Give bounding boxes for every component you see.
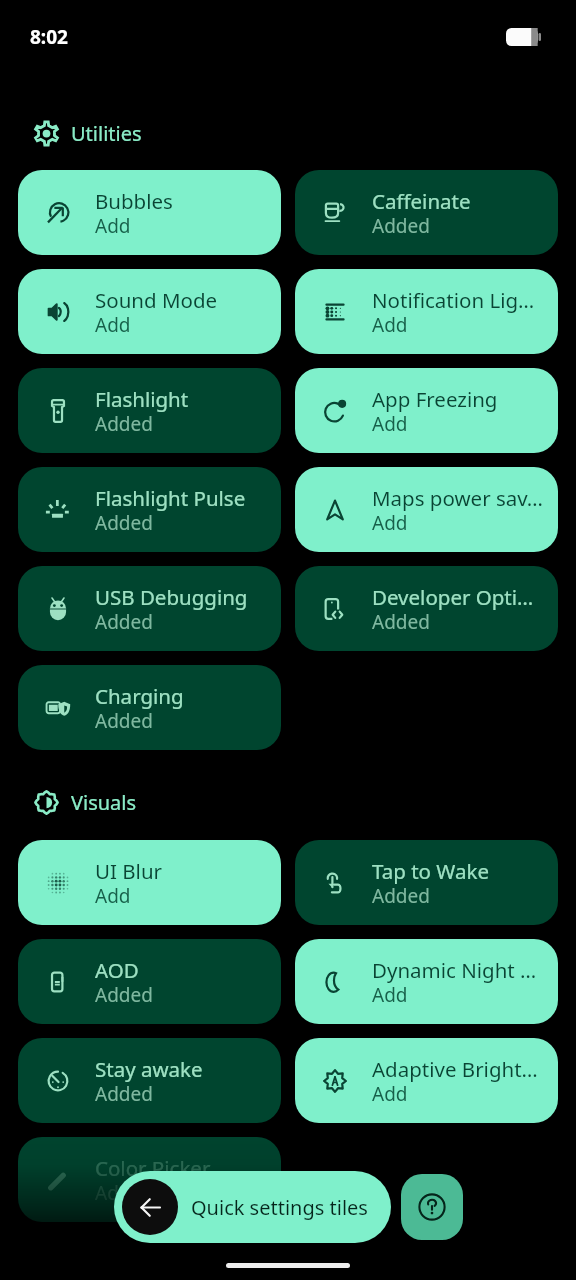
staticText: Add — [372, 982, 408, 1008]
staticText: USB Debugging — [95, 583, 248, 611]
staticText: Added — [95, 708, 153, 734]
staticText: Utilities — [71, 120, 142, 147]
button[interactable]: AOD — [18, 939, 281, 1024]
staticText: Added — [95, 510, 153, 536]
button[interactable]: Flashlight — [18, 368, 281, 453]
button[interactable]: USB Debugging — [18, 566, 281, 651]
staticText: Visuals — [71, 789, 137, 816]
staticText: Flashlight Pulse — [95, 484, 246, 512]
staticText: Color Picker — [95, 1154, 211, 1182]
button[interactable]: Adaptive Bright… — [295, 1038, 558, 1123]
staticText: Charging — [95, 682, 184, 710]
staticText: Added — [95, 1081, 153, 1107]
staticText: Add — [372, 1081, 408, 1107]
button[interactable]: Help — [401, 1174, 463, 1240]
button[interactable]: Charging — [18, 665, 281, 750]
staticText: Maps power sav… — [372, 484, 544, 512]
staticText: AOD — [95, 956, 139, 984]
button[interactable]: Sound Mode — [18, 269, 281, 354]
staticText: Add — [95, 883, 131, 909]
staticText: Add — [372, 411, 408, 437]
staticText: Add — [95, 312, 131, 338]
staticText: Bubbles — [95, 187, 173, 215]
staticText: Caffeinate — [372, 187, 471, 215]
staticText: Added — [95, 609, 153, 635]
button[interactable]: Dynamic Night … — [295, 939, 558, 1024]
staticText: Sound Mode — [95, 286, 218, 314]
staticText: Add — [372, 312, 408, 338]
staticText: 8:02 — [30, 24, 68, 50]
staticText: UI Blur — [95, 857, 163, 885]
button[interactable]: Back — [114, 1171, 391, 1243]
button[interactable]: Maps power sav… — [295, 467, 558, 552]
button[interactable]: Caffeinate — [295, 170, 558, 255]
staticText: Dynamic Night … — [372, 956, 537, 984]
staticText: Quick settings tiles — [191, 1194, 368, 1221]
button[interactable]: UI Blur — [18, 840, 281, 925]
button[interactable]: Color Picker — [18, 1137, 281, 1222]
button[interactable]: Stay awake — [18, 1038, 281, 1123]
button[interactable]: Bubbles — [18, 170, 281, 255]
staticText: Adaptive Bright… — [372, 1055, 538, 1083]
staticText: Developer Opti… — [372, 583, 534, 611]
staticText: Added — [95, 411, 153, 437]
button[interactable]: Tap to Wake — [295, 840, 558, 925]
staticText: Added — [95, 982, 153, 1008]
button[interactable]: App Freezing — [295, 368, 558, 453]
button[interactable]: Notification Lig… — [295, 269, 558, 354]
staticText: Notification Lig… — [372, 286, 535, 314]
staticText: App Freezing — [372, 385, 498, 413]
staticText: Add — [372, 510, 408, 536]
staticText: Add — [95, 1180, 131, 1206]
staticText: Stay awake — [95, 1055, 203, 1083]
staticText: Flashlight — [95, 385, 189, 413]
button[interactable]: Back — [122, 1179, 178, 1235]
staticText: Added — [372, 883, 430, 909]
staticText: Added — [372, 609, 430, 635]
staticText: Added — [372, 213, 430, 239]
staticText: Tap to Wake — [372, 857, 489, 885]
staticText: Add — [95, 213, 131, 239]
button[interactable]: Flashlight Pulse — [18, 467, 281, 552]
button[interactable]: Developer Opti… — [295, 566, 558, 651]
